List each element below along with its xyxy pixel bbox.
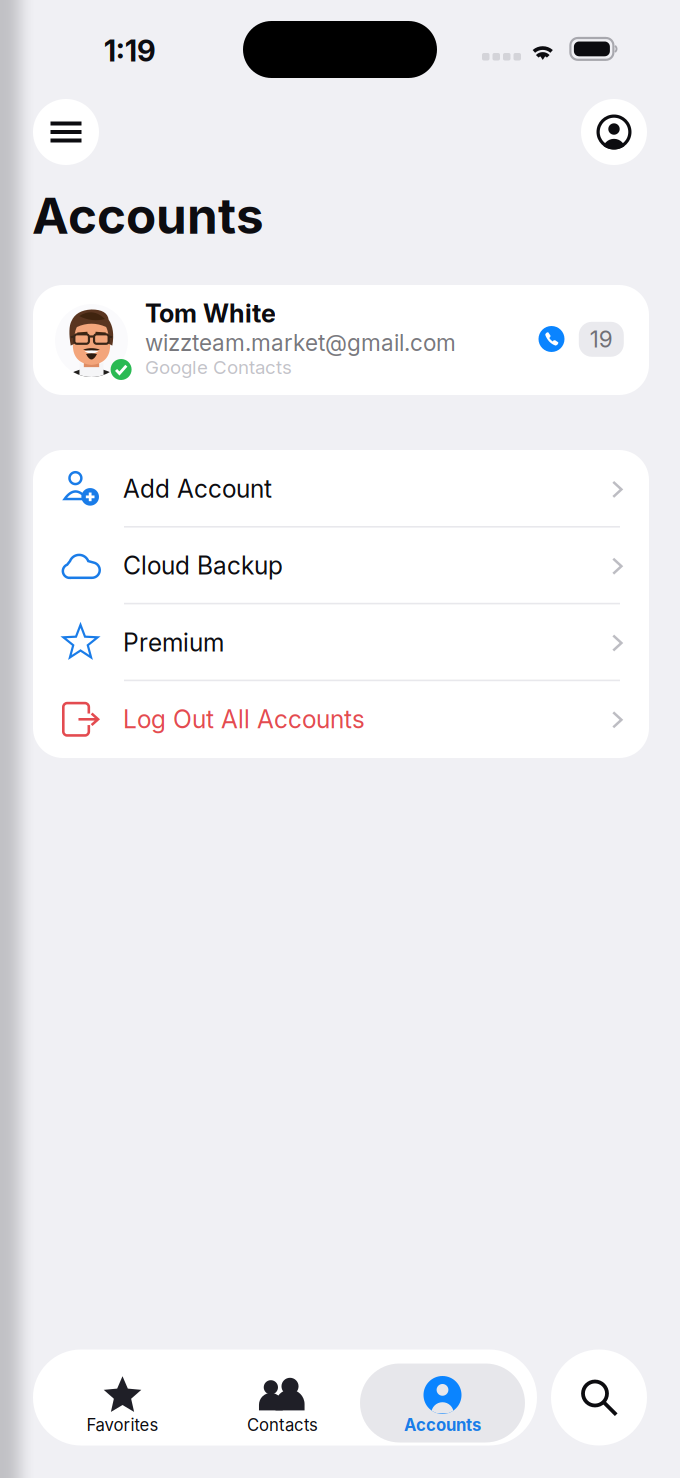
- button[interactable]: Menu: [33, 99, 99, 165]
- staticText: Favorites: [86, 1415, 158, 1435]
- staticText: Cloud Backup: [123, 551, 283, 580]
- button[interactable]: Accounts: [365, 1349, 525, 1445]
- button[interactable]: Favorites: [45, 1349, 205, 1445]
- button[interactable]: Profile: [581, 99, 647, 165]
- staticText: 19: [590, 326, 613, 353]
- staticText: Add Account: [123, 474, 272, 504]
- staticText: Premium: [123, 627, 224, 657]
- button[interactable]: Search: [551, 1349, 647, 1445]
- staticText: Accounts: [404, 1415, 481, 1435]
- button[interactable]: Add Account: [33, 450, 649, 527]
- button[interactable]: Contacts: [205, 1349, 365, 1445]
- staticText: Log Out All Accounts: [123, 704, 365, 734]
- staticText: wizzteam.market@gmail.com: [145, 329, 456, 356]
- button[interactable]: Log Out All Accounts: [33, 681, 649, 758]
- staticText: 1:19: [104, 33, 156, 68]
- button[interactable]: Cloud Backup: [33, 527, 649, 604]
- staticText: Contacts: [247, 1415, 318, 1435]
- button[interactable]: Premium: [33, 604, 649, 681]
- staticText: Tom White: [145, 298, 276, 329]
- staticText: Accounts: [32, 186, 264, 246]
- button[interactable]: Tom White: [33, 285, 649, 395]
- staticText: Google Contacts: [145, 356, 292, 379]
